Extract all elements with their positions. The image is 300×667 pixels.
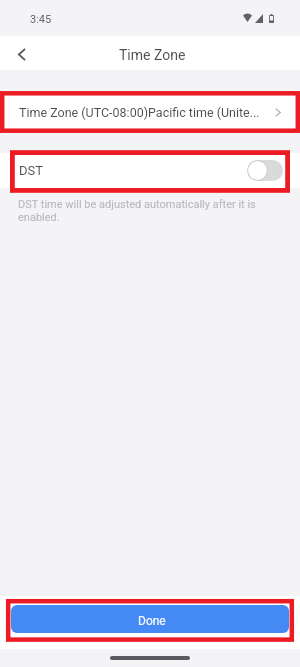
staticText: Time Zone bbox=[119, 47, 186, 63]
staticText: DST time will be adjusted automatically … bbox=[18, 198, 256, 223]
button[interactable]: Time Zone (UTC-08:00)Pacific time (Unite… bbox=[0, 93, 300, 131]
button[interactable]: DST toggle bbox=[247, 160, 283, 181]
staticText: Time Zone (UTC-08:00)Pacific time (Unite… bbox=[19, 105, 275, 120]
button[interactable]: Back bbox=[5, 36, 35, 70]
staticText: Done bbox=[138, 614, 166, 628]
button[interactable]: Done bbox=[11, 605, 289, 633]
staticText: 3:45 bbox=[30, 13, 52, 26]
staticText: DST bbox=[19, 163, 247, 178]
button[interactable]: DST bbox=[0, 153, 300, 188]
